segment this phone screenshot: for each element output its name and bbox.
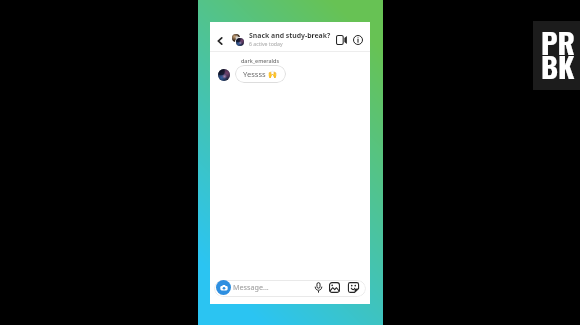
staticText: Snack and study-break? [249,31,331,40]
button[interactable]: Video call [334,33,348,47]
staticText: Message... [233,282,269,292]
button[interactable]: Sticker [346,280,361,295]
button[interactable]: Info [351,33,365,47]
button[interactable]: Camera [216,280,231,295]
button[interactable]: Voice message [311,280,326,295]
staticText: dark_emeralds [241,57,280,64]
button[interactable]: Back [214,35,225,46]
button[interactable]: Gallery [327,280,342,295]
button[interactable]: Yessss 🙌 [235,65,286,83]
staticText: 6 active today [249,40,283,47]
staticText: PR [541,20,575,63]
staticText: Yessss 🙌 [243,69,278,79]
staticText: BK [541,44,575,87]
